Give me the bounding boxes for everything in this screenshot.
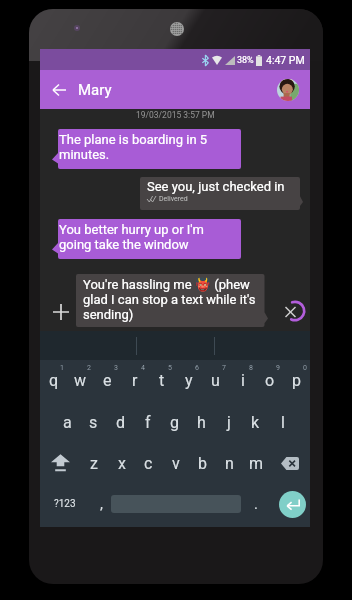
button[interactable]: a xyxy=(54,402,80,442)
button[interactable]: Add attachment xyxy=(47,298,75,326)
button[interactable]: . xyxy=(244,481,268,527)
staticText: 8 xyxy=(249,364,253,372)
button[interactable]: 7 xyxy=(202,360,229,401)
button[interactable]: h xyxy=(188,402,215,442)
button[interactable]: 1 xyxy=(40,360,67,401)
button[interactable]: Cancel sending xyxy=(281,297,309,325)
button[interactable]: z xyxy=(80,443,108,483)
staticText: You better hurry up or I'm going take th… xyxy=(59,222,230,252)
staticText: z xyxy=(90,454,98,473)
staticText: 1 xyxy=(60,364,64,372)
button[interactable]: d xyxy=(107,402,134,442)
button[interactable]: ?123 xyxy=(42,481,88,527)
button[interactable]: 5 xyxy=(148,360,175,401)
staticText: 7 xyxy=(222,364,226,372)
button[interactable]: n xyxy=(216,443,243,483)
button[interactable]: 9 xyxy=(256,360,283,401)
staticText: h xyxy=(197,413,206,432)
staticText: y xyxy=(185,371,193,390)
button[interactable]: s xyxy=(80,402,107,442)
staticText: j xyxy=(227,413,231,432)
button[interactable]: 2 xyxy=(67,360,94,401)
staticText: f xyxy=(145,413,151,432)
button[interactable]: Backspace xyxy=(270,443,310,483)
staticText: 4 xyxy=(141,364,145,372)
button[interactable]: Shift xyxy=(40,443,80,483)
staticText: 4:47 PM xyxy=(266,54,305,66)
staticText: The plane is boarding in 5 minutes. xyxy=(59,132,230,162)
button[interactable]: 0 xyxy=(283,360,310,401)
button[interactable]: x xyxy=(108,443,135,483)
staticText: x xyxy=(118,454,126,473)
staticText: 3 xyxy=(114,364,118,372)
staticText: r xyxy=(132,371,138,390)
staticText: 38% xyxy=(237,55,254,66)
staticText: 0 xyxy=(303,364,307,372)
staticText: e xyxy=(103,371,112,390)
staticText: Mary xyxy=(78,81,112,99)
staticText: ?123 xyxy=(54,498,76,510)
staticText: w xyxy=(74,371,87,390)
staticText: k xyxy=(251,413,260,432)
staticText: 9 xyxy=(276,364,280,372)
button[interactable]: Contact photo xyxy=(277,79,299,101)
staticText: o xyxy=(265,371,275,390)
button[interactable]: b xyxy=(189,443,216,483)
button[interactable]: Back xyxy=(45,76,73,104)
staticText: 19/03/2015 3:57 PM xyxy=(136,110,215,120)
button[interactable]: , xyxy=(90,481,112,527)
staticText: You're hassling me 👹 (phew glad I can st… xyxy=(83,277,259,322)
staticText: b xyxy=(198,454,207,473)
staticText: i xyxy=(241,371,245,390)
staticText: c xyxy=(144,454,153,473)
staticText: l xyxy=(281,413,285,432)
staticText: m xyxy=(249,454,264,473)
staticText: p xyxy=(292,371,301,390)
button[interactable]: m xyxy=(243,443,270,483)
staticText: d xyxy=(116,413,126,432)
button[interactable]: c xyxy=(135,443,162,483)
staticText: . xyxy=(254,495,258,513)
button[interactable]: Enter xyxy=(274,481,310,527)
staticText: s xyxy=(89,413,98,432)
button[interactable]: 8 xyxy=(229,360,256,401)
staticText: a xyxy=(63,413,72,432)
button[interactable]: l xyxy=(269,402,296,442)
staticText: 5 xyxy=(168,364,172,372)
button[interactable]: k xyxy=(242,402,269,442)
staticText: q xyxy=(49,371,59,390)
staticText: v xyxy=(172,454,180,473)
button[interactable]: g xyxy=(161,402,188,442)
staticText: , xyxy=(100,495,103,513)
staticText: Delivered xyxy=(159,195,188,203)
staticText: g xyxy=(170,413,179,432)
staticText: t xyxy=(159,371,165,390)
staticText: 2 xyxy=(87,364,91,372)
button[interactable]: j xyxy=(215,402,242,442)
staticText: 6 xyxy=(195,364,199,372)
button[interactable]: v xyxy=(162,443,189,483)
staticText: n xyxy=(225,454,234,473)
button[interactable]: 6 xyxy=(175,360,202,401)
staticText: u xyxy=(211,371,220,390)
button[interactable]: f xyxy=(134,402,161,442)
button[interactable]: 4 xyxy=(121,360,148,401)
button[interactable]: 3 xyxy=(94,360,121,401)
staticText: See you, just checked in xyxy=(147,179,285,194)
